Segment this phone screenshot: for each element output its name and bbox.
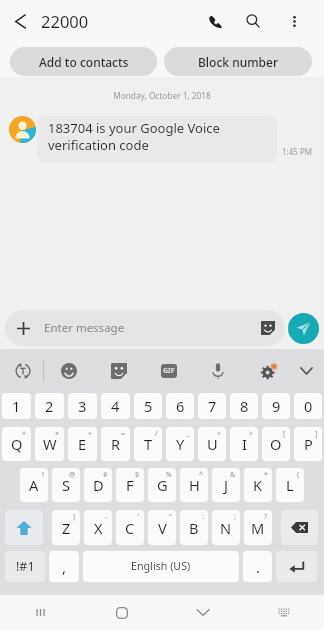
staticText: B (189, 518, 199, 538)
button[interactable]: Y (166, 427, 194, 461)
staticText: Monday, October 1, 2018 (113, 90, 211, 101)
button[interactable]: T (134, 427, 162, 461)
button[interactable]: Keyboard (243, 595, 324, 630)
button[interactable]: Add to contacts (10, 47, 157, 76)
button[interactable]: G (148, 468, 176, 502)
button[interactable]: Symbols (5, 551, 45, 582)
button[interactable]: S (52, 468, 80, 502)
button[interactable]: Hide keyboard (284, 349, 324, 393)
staticText: L (286, 475, 294, 495)
button[interactable]: English (US) (83, 551, 239, 582)
button[interactable]: Backspace (281, 510, 318, 545)
staticText: - (105, 512, 108, 522)
button[interactable]: K (244, 468, 272, 502)
staticText: 9 (272, 396, 281, 416)
button[interactable]: U (198, 427, 226, 461)
button[interactable]: V (148, 510, 176, 545)
button[interactable]: P (294, 427, 322, 461)
button[interactable]: 7 (198, 393, 226, 419)
button[interactable]: 3 (68, 393, 97, 419)
staticText: ^ (199, 470, 204, 480)
staticText: 22000 (41, 10, 89, 32)
button[interactable]: Add attachment (5, 310, 41, 346)
button[interactable]: H (180, 468, 208, 502)
staticText: % (166, 470, 172, 480)
button[interactable]: GIF (147, 349, 191, 393)
staticText: 4 (111, 396, 120, 416)
button[interactable]: Search (234, 0, 272, 42)
staticText: V (158, 518, 167, 538)
staticText: Q (11, 434, 23, 454)
staticText: ? (264, 512, 268, 522)
button[interactable]: Call (196, 0, 234, 42)
button[interactable]: O (262, 427, 290, 461)
button[interactable]: Enter (276, 551, 317, 582)
button[interactable]: Home (81, 595, 162, 630)
staticText: ! (42, 470, 44, 480)
staticText: 1:45 PM (282, 146, 313, 157)
staticText: Block number (198, 54, 278, 70)
button[interactable]: 1 (2, 393, 31, 419)
staticText: ' (138, 512, 140, 522)
button[interactable]: W (35, 427, 64, 461)
staticText: K (253, 475, 263, 495)
staticText: 5 (144, 396, 153, 416)
staticText: 8 (240, 396, 249, 416)
button[interactable]: 0 (294, 393, 322, 419)
staticText: O (270, 434, 282, 454)
button[interactable]: 9 (262, 393, 290, 419)
button[interactable]: N (212, 510, 240, 545)
button[interactable]: Translate (1, 349, 45, 393)
button[interactable]: 5 (134, 393, 162, 419)
button[interactable]: 6 (166, 393, 194, 419)
staticText: G (157, 475, 168, 495)
button[interactable]: L (276, 468, 304, 502)
button[interactable]: More options (275, 0, 313, 42)
staticText: A (29, 475, 39, 495)
button[interactable]: C (116, 510, 144, 545)
button[interactable]: Emoji (47, 349, 91, 393)
button[interactable]: D (84, 468, 112, 502)
staticText: , (62, 557, 66, 577)
button[interactable]: Q (2, 427, 31, 461)
button[interactable]: Block number (164, 47, 312, 76)
button[interactable]: 2 (35, 393, 64, 419)
staticText: 0 (304, 396, 313, 416)
button[interactable]: I (230, 427, 258, 461)
button[interactable]: . (243, 551, 272, 582)
button[interactable]: F (116, 468, 144, 502)
staticText: H (189, 475, 200, 495)
button[interactable]: J (212, 468, 240, 502)
button[interactable]: Voice input (196, 349, 240, 393)
button[interactable]: Recent apps (0, 595, 81, 630)
staticText: X (94, 518, 103, 538)
button[interactable]: B (180, 510, 208, 545)
staticText: × (55, 429, 60, 439)
staticText: N (220, 518, 232, 538)
button[interactable]: , (49, 551, 79, 582)
button[interactable]: R (101, 427, 130, 461)
staticText: & (230, 470, 236, 480)
button[interactable]: A (20, 468, 48, 502)
button[interactable]: Stickers (97, 349, 141, 393)
button[interactable]: E (68, 427, 97, 461)
staticText: @ (69, 470, 76, 480)
staticText: E (78, 434, 87, 454)
staticText: M (251, 518, 265, 538)
button[interactable]: X (84, 510, 112, 545)
staticText: Y (176, 434, 185, 454)
button[interactable]: Settings (246, 349, 290, 393)
button[interactable]: Back (162, 595, 243, 630)
button[interactable]: Back (0, 0, 40, 42)
button[interactable]: M (244, 510, 272, 545)
button[interactable]: Z (52, 510, 80, 545)
button[interactable]: Send (288, 313, 319, 344)
button[interactable]: Shift (5, 510, 43, 545)
button[interactable]: Stickers (251, 310, 285, 346)
staticText: English (US) (131, 559, 191, 574)
staticText: < (217, 429, 222, 439)
button[interactable]: 4 (101, 393, 130, 419)
staticText: Add to contacts (39, 54, 129, 70)
button[interactable]: 8 (230, 393, 258, 419)
staticText: !#1 (16, 558, 35, 575)
